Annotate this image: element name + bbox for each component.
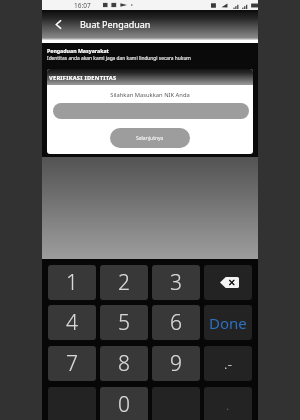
button[interactable]: 2 <box>100 265 148 300</box>
staticText: 16:07 <box>74 1 91 10</box>
staticText: Silahkan Masukkan NIK Anda <box>47 91 253 99</box>
button[interactable]: 3 <box>152 265 200 300</box>
staticText: 2 <box>118 268 130 297</box>
button[interactable]: Back <box>46 12 70 36</box>
staticText: 6 <box>170 308 182 337</box>
button[interactable]: 4 <box>48 305 96 340</box>
button[interactable]: 0 <box>100 387 148 420</box>
button[interactable]: .- <box>204 346 252 381</box>
button[interactable]: 9 <box>152 346 200 381</box>
button[interactable]: 6 <box>152 305 200 340</box>
staticText: Pengaduan Masyarakat <box>47 47 109 54</box>
button[interactable]: Done <box>204 305 252 340</box>
staticText: . <box>226 395 230 414</box>
staticText: .- <box>224 354 232 373</box>
button[interactable]: Backspace <box>204 265 252 300</box>
button[interactable]: 1 <box>48 265 96 300</box>
staticText: VERIFIKASI IDENTITAS <box>49 74 117 82</box>
button[interactable]: Selanjutnya <box>110 128 190 148</box>
staticText: Selanjutnya <box>136 135 164 142</box>
staticText: Identitas anda akan kami jaga dan kami l… <box>47 55 191 62</box>
button[interactable]: 5 <box>100 305 148 340</box>
button[interactable]: 8 <box>100 346 148 381</box>
staticText: 0 <box>118 390 130 419</box>
button[interactable]: 7 <box>48 346 96 381</box>
staticText: Buat Pengaduan <box>80 18 151 30</box>
button[interactable] <box>53 103 249 119</box>
staticText: Done <box>209 313 247 333</box>
staticText: 4 <box>66 308 78 337</box>
staticText: 8 <box>118 349 130 378</box>
staticText: 5 <box>118 308 130 337</box>
staticText: 3 <box>170 268 182 297</box>
staticText: 1 <box>66 268 78 297</box>
staticText: 9 <box>170 349 182 378</box>
staticText: 7 <box>66 349 78 378</box>
